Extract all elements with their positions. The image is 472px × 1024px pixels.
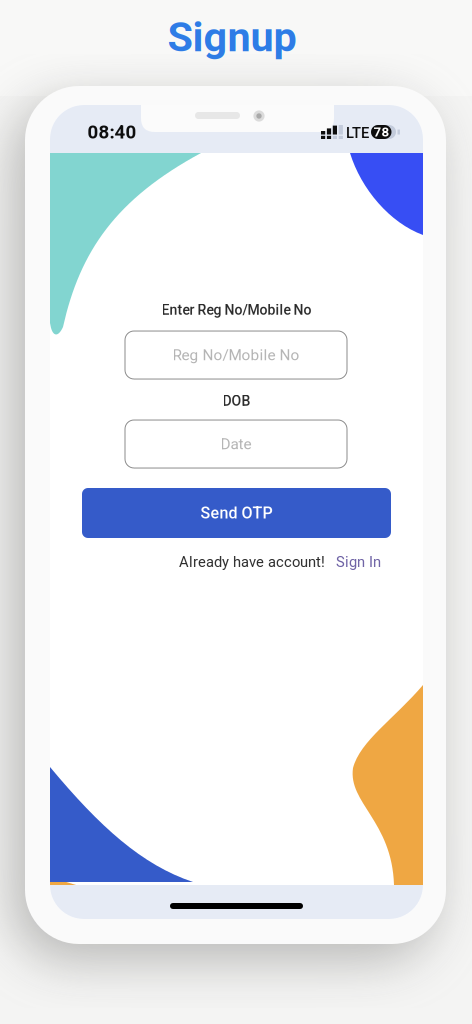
staticText: Send OTP <box>200 504 272 522</box>
staticText: Already have account! <box>179 553 325 571</box>
staticText: 78 <box>373 124 389 140</box>
staticText: LTE <box>346 124 369 142</box>
staticText: Sign In <box>336 553 381 571</box>
button[interactable]: Send OTP <box>82 488 391 538</box>
staticText: 08:40 <box>87 121 136 143</box>
staticText: Reg No/Mobile No <box>172 346 299 364</box>
staticText: Date <box>220 435 251 453</box>
button[interactable]: Sign In <box>336 553 384 571</box>
button[interactable]: Date <box>125 420 347 468</box>
staticText: Enter Reg No/Mobile No <box>161 302 311 318</box>
button[interactable]: Reg No/Mobile No <box>125 331 347 379</box>
staticText: DOB <box>222 393 250 409</box>
staticText: Signup <box>167 13 296 61</box>
